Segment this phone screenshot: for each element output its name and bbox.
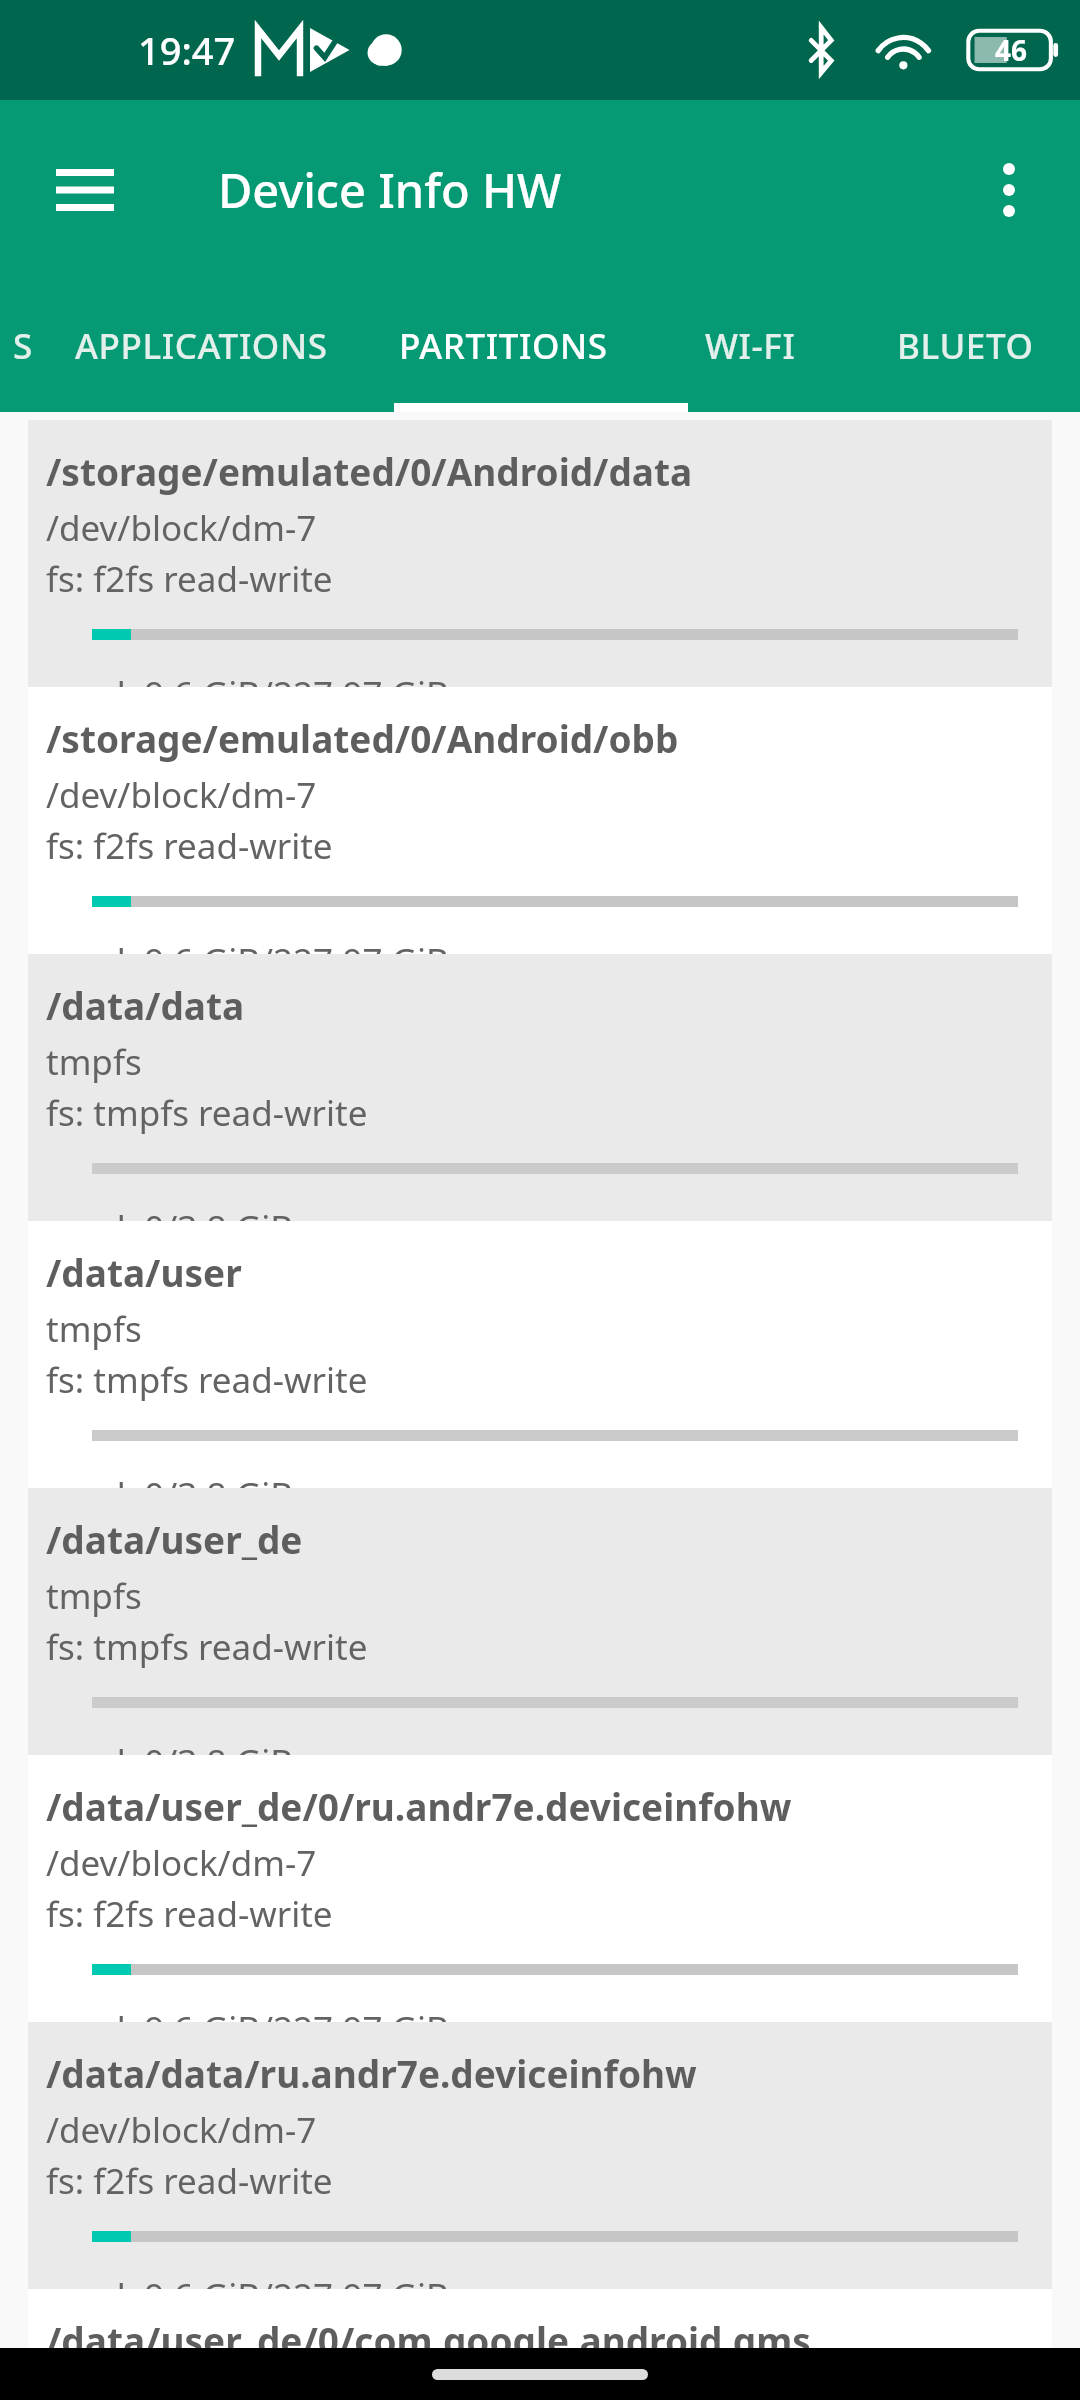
button[interactable]: /data/data/ru.andr7e.deviceinfohw: [28, 2022, 1052, 2289]
button[interactable]: S: [0, 280, 46, 412]
button[interactable]: APPLICATIONS: [46, 280, 356, 412]
staticText: 19:47: [138, 24, 236, 76]
button[interactable]: WI-FI: [650, 280, 850, 412]
staticText: PARTITIONS: [399, 322, 608, 370]
staticText: 46: [995, 31, 1028, 69]
button[interactable]: /storage/emulated/0/Android/obb: [28, 687, 1052, 954]
staticText: tmpfs: [46, 1572, 142, 1620]
button[interactable]: More options: [954, 131, 1064, 249]
button[interactable]: /storage/emulated/0/Android/data: [28, 420, 1052, 687]
staticText: S: [13, 322, 33, 370]
staticText: /dev/block/dm-7: [46, 504, 317, 552]
staticText: /dev/block/dm-7: [46, 1839, 317, 1887]
staticText: fs: tmpfs read-write: [46, 1356, 368, 1404]
staticText: /data/user_de/0/com.google.android.gms: [46, 2315, 811, 2348]
button[interactable]: BLUETO: [850, 280, 1080, 412]
staticText: WI-FI: [705, 322, 796, 370]
staticText: BLUETO: [897, 322, 1034, 370]
staticText: fs: f2fs read-write: [46, 555, 333, 603]
button[interactable]: /data/user_de/0/com.google.android.gms: [28, 2289, 1052, 2348]
staticText: /storage/emulated/0/Android/obb: [46, 713, 679, 763]
staticText: fs: f2fs read-write: [46, 1890, 333, 1938]
button[interactable]: /data/data: [28, 954, 1052, 1221]
staticText: Device Info HW: [218, 158, 562, 222]
staticText: fs: tmpfs read-write: [46, 1089, 368, 1137]
staticText: /storage/emulated/0/Android/data: [46, 446, 693, 496]
staticText: fs: tmpfs read-write: [46, 1623, 368, 1671]
staticText: used: 0/3.8 GiB: [46, 1471, 293, 1488]
staticText: fs: f2fs read-write: [46, 2157, 333, 2205]
staticText: tmpfs: [46, 1038, 142, 1086]
staticText: tmpfs: [46, 1305, 142, 1353]
staticText: /dev/block/dm-7: [46, 771, 317, 819]
staticText: used: 9.6 GiB/227.97 GiB: [46, 937, 449, 954]
button[interactable]: /data/user_de: [28, 1488, 1052, 1755]
staticText: used: 9.6 GiB/227.97 GiB: [46, 2005, 449, 2022]
staticText: used: 0/3.8 GiB: [46, 1738, 293, 1755]
staticText: /data/user: [46, 1247, 242, 1297]
staticText: fs: f2fs read-write: [46, 822, 333, 870]
button[interactable]: Open navigation drawer: [26, 131, 144, 249]
staticText: /data/user_de/0/ru.andr7e.deviceinfohw: [46, 1781, 792, 1831]
staticText: /data/data/ru.andr7e.deviceinfohw: [46, 2048, 697, 2098]
staticText: APPLICATIONS: [75, 322, 328, 370]
staticText: /data/user_de: [46, 1514, 303, 1564]
button[interactable]: /data/user_de/0/ru.andr7e.deviceinfohw: [28, 1755, 1052, 2022]
staticText: /dev/block/dm-7: [46, 2106, 317, 2154]
staticText: used: 0/3.8 GiB: [46, 1204, 293, 1221]
button[interactable]: PARTITIONS: [356, 280, 650, 412]
button[interactable]: /data/user: [28, 1221, 1052, 1488]
staticText: used: 9.6 GiB/227.97 GiB: [46, 2272, 449, 2289]
staticText: /data/data: [46, 980, 245, 1030]
staticText: used: 9.6 GiB/227.97 GiB: [46, 670, 449, 687]
